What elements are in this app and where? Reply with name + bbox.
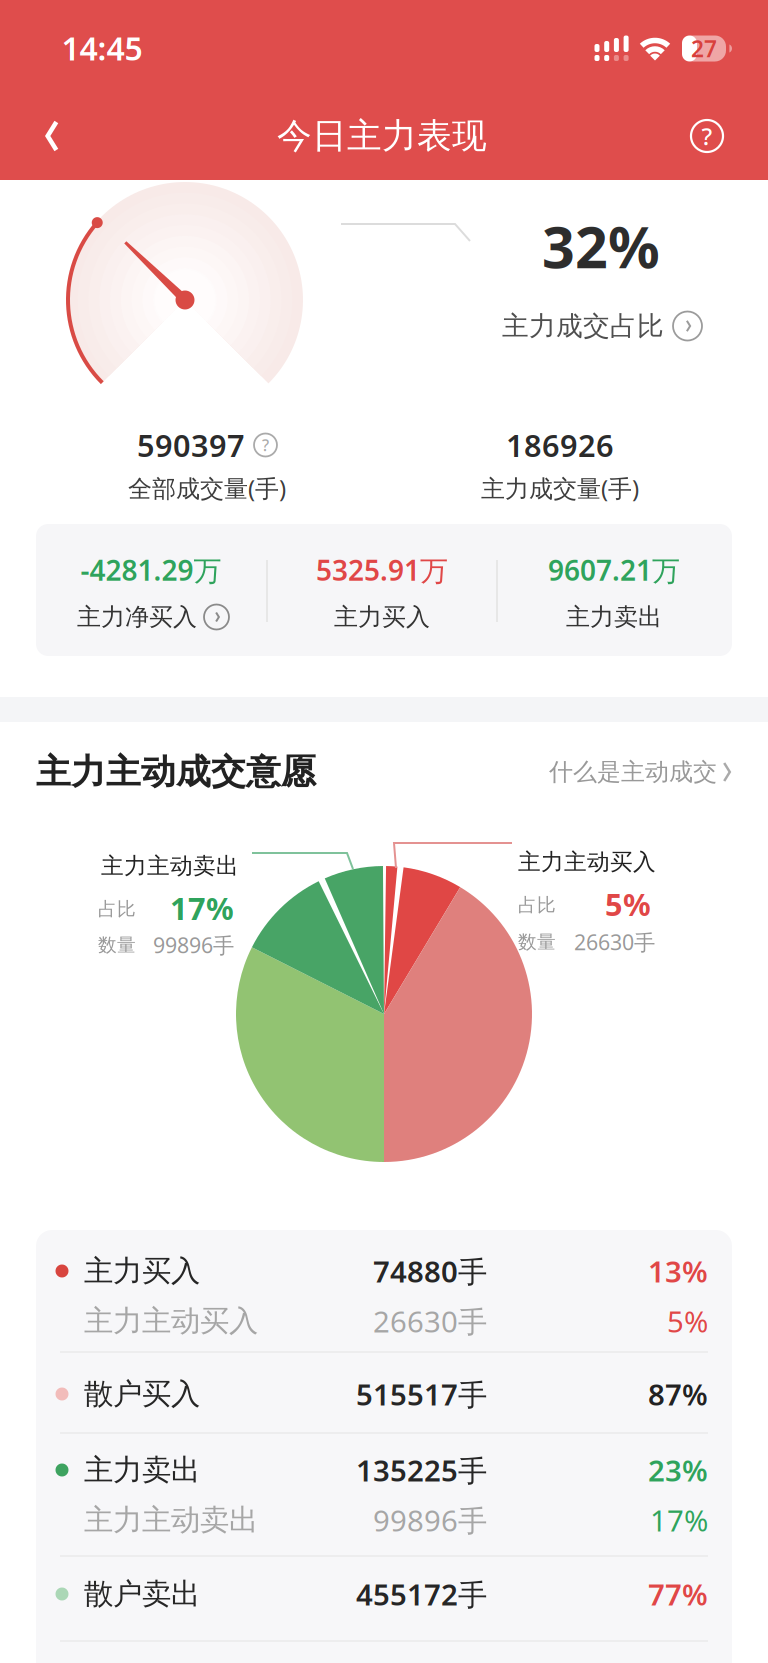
staticText: 135225手 bbox=[356, 1450, 487, 1489]
staticText: 99896手 bbox=[153, 931, 234, 959]
staticText: 17% bbox=[650, 1500, 708, 1539]
staticText: ? bbox=[701, 120, 712, 152]
staticText: 散户卖出 bbox=[84, 1576, 200, 1612]
staticText: 17% bbox=[170, 888, 234, 928]
staticText: 13% bbox=[648, 1251, 708, 1290]
staticText: 23% bbox=[648, 1450, 708, 1489]
staticText: 数量 bbox=[98, 933, 136, 956]
staticText: 27 bbox=[691, 33, 717, 63]
staticText: 455172手 bbox=[356, 1574, 487, 1613]
staticText: 186926 bbox=[506, 425, 614, 465]
staticText: 5% bbox=[667, 1301, 708, 1340]
staticText: 全部成交量(手) bbox=[128, 472, 286, 504]
staticText: 515517手 bbox=[356, 1374, 487, 1413]
staticText: 主力成交量(手) bbox=[481, 472, 639, 504]
button[interactable]: 主力成交占比 bbox=[502, 310, 702, 342]
staticText: ? bbox=[262, 434, 269, 456]
staticText: 主力主动卖出 bbox=[84, 1502, 258, 1538]
staticText: 主力成交占比 bbox=[502, 310, 664, 342]
staticText: 什么是主动成交 bbox=[549, 757, 717, 787]
staticText: 9607.21万 bbox=[548, 551, 680, 589]
staticText: 主力主动买入 bbox=[84, 1303, 258, 1339]
staticText: 主力卖出 bbox=[84, 1452, 200, 1488]
button[interactable]: 什么是主动成交 bbox=[432, 757, 732, 787]
staticText: 5325.91万 bbox=[316, 551, 448, 589]
staticText: 26630手 bbox=[574, 928, 655, 956]
staticText: 32% bbox=[542, 208, 660, 284]
staticText: 散户买入 bbox=[84, 1376, 200, 1412]
staticText: 590397 bbox=[137, 425, 245, 465]
staticText: 主力买入 bbox=[84, 1253, 200, 1289]
staticText: 主力主动买入 bbox=[518, 848, 656, 876]
button[interactable]: Help bbox=[691, 120, 723, 152]
staticText: 主力卖出 bbox=[566, 602, 662, 632]
button[interactable]: Back bbox=[30, 114, 74, 158]
staticText: 5% bbox=[605, 884, 651, 924]
staticText: 占比 bbox=[518, 893, 556, 916]
button[interactable]: 主力净买入 bbox=[77, 602, 229, 632]
staticText: 26630手 bbox=[373, 1301, 487, 1340]
staticText: 主力净买入 bbox=[77, 602, 197, 632]
staticText: 99896手 bbox=[373, 1500, 487, 1539]
staticText: 74880手 bbox=[373, 1251, 487, 1290]
staticText: 数量 bbox=[518, 930, 556, 953]
button[interactable]: 590397 bbox=[137, 425, 277, 465]
staticText: 主力买入 bbox=[334, 602, 430, 632]
staticText: 14:45 bbox=[61, 27, 142, 69]
staticText: 77% bbox=[648, 1574, 708, 1613]
staticText: 今日主力表现 bbox=[277, 115, 487, 157]
staticText: -4281.29万 bbox=[80, 551, 221, 589]
staticText: 占比 bbox=[98, 897, 136, 920]
staticText: 主力主动卖出 bbox=[101, 852, 239, 880]
staticText: 主力主动成交意愿 bbox=[36, 751, 316, 793]
staticText: 87% bbox=[648, 1374, 708, 1413]
